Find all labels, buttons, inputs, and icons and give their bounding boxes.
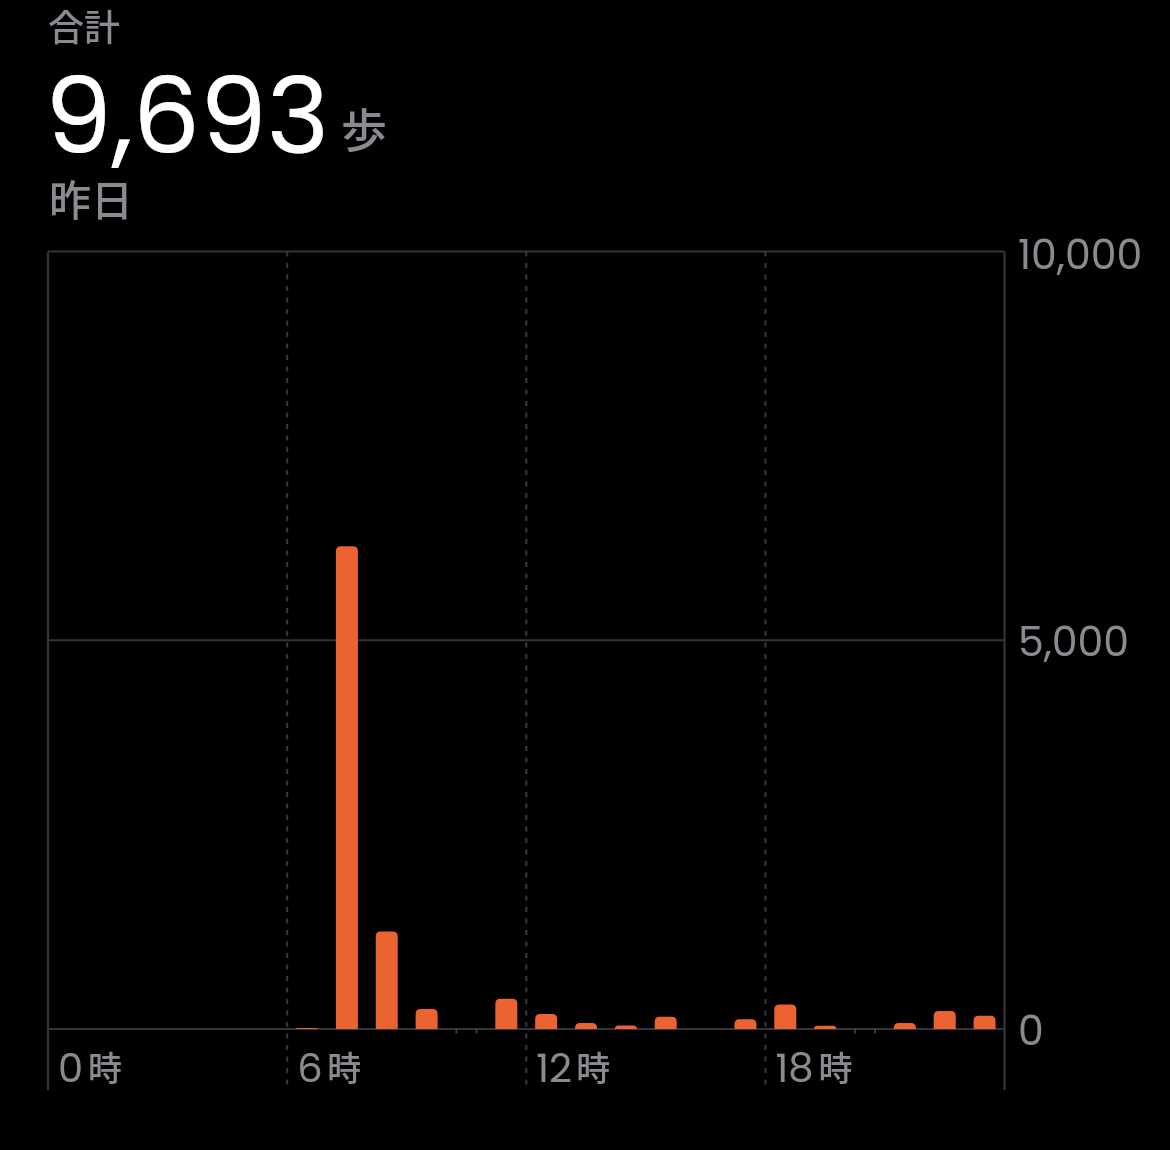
button[interactable]: Yesterday step count chart, 9,693 steps (0, 0, 1170, 1150)
